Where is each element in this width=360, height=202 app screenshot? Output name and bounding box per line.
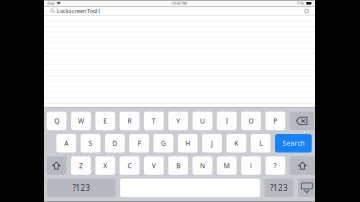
button[interactable] <box>44 16 315 21</box>
button[interactable]: D <box>105 134 125 152</box>
button[interactable]: X <box>95 156 115 175</box>
button[interactable]: C <box>120 156 139 175</box>
staticText: Y <box>176 116 180 125</box>
staticText: S <box>89 139 93 148</box>
staticText: V <box>152 161 156 170</box>
button[interactable]: ! <box>241 156 261 175</box>
staticText: B <box>176 161 180 170</box>
button[interactable]: U <box>193 112 212 130</box>
button[interactable] <box>44 38 315 43</box>
button[interactable]: ?123 <box>265 179 293 197</box>
button[interactable]: A <box>56 134 76 152</box>
staticText: W <box>78 116 84 125</box>
staticText: J <box>211 139 213 148</box>
staticText: F <box>138 139 141 148</box>
button[interactable]: ? <box>265 156 285 175</box>
staticText: L <box>259 139 262 148</box>
staticText: N <box>200 161 205 170</box>
button[interactable]: W <box>71 112 91 130</box>
staticText: X <box>103 161 107 170</box>
button[interactable]: N <box>193 156 212 175</box>
button[interactable]: S <box>81 134 100 152</box>
staticText: O <box>249 116 254 125</box>
button[interactable]: Shift <box>47 156 67 175</box>
staticText: ?123 <box>270 182 288 193</box>
staticText: 71% <box>297 1 304 6</box>
button[interactable]: Delete <box>290 112 314 130</box>
button[interactable] <box>44 60 315 65</box>
staticText: T <box>152 116 156 125</box>
button[interactable]: R <box>120 112 139 130</box>
button[interactable]: E <box>95 112 115 130</box>
button[interactable]: ?123 <box>47 179 116 197</box>
button[interactable]: F <box>129 134 149 152</box>
staticText: Lockscreen Tool <box>57 7 97 15</box>
button[interactable] <box>44 27 315 32</box>
staticText: C <box>128 161 132 170</box>
button[interactable]: H <box>178 134 198 152</box>
staticText: K <box>234 139 238 148</box>
staticText: 10:05 PM <box>171 1 187 6</box>
button[interactable]: L <box>251 134 271 152</box>
button[interactable]: B <box>168 156 188 175</box>
button[interactable] <box>44 82 315 87</box>
staticText: R <box>128 116 132 125</box>
staticText: Q <box>54 116 59 125</box>
staticText: U <box>200 116 205 125</box>
staticText: Z <box>79 161 83 170</box>
staticText: M <box>224 161 230 170</box>
button[interactable]: I <box>217 112 237 130</box>
button[interactable]: Hide Keyboard <box>298 179 316 197</box>
staticText: ?123 <box>72 182 90 193</box>
staticText: E <box>103 116 107 125</box>
staticText: P <box>273 116 277 125</box>
button[interactable]: Q <box>47 112 67 130</box>
button[interactable]: Shift <box>290 156 316 175</box>
staticText: G <box>161 139 166 148</box>
button[interactable]: J <box>202 134 222 152</box>
staticText: H <box>185 139 190 148</box>
button[interactable] <box>44 49 315 54</box>
staticText: Search <box>282 139 304 148</box>
button[interactable] <box>44 71 315 76</box>
staticText: iPad <box>47 1 54 6</box>
button[interactable]: T <box>144 112 164 130</box>
staticText: ! <box>250 161 252 170</box>
staticText: A <box>64 139 68 148</box>
button[interactable]: K <box>226 134 246 152</box>
staticText: D <box>112 139 117 148</box>
button[interactable]: Y <box>168 112 188 130</box>
button[interactable]: O <box>241 112 261 130</box>
button[interactable]: M <box>217 156 237 175</box>
button[interactable]: V <box>144 156 164 175</box>
button[interactable]: Search <box>275 134 312 152</box>
button[interactable]: Z <box>71 156 91 175</box>
button[interactable]: P <box>265 112 285 130</box>
button[interactable] <box>44 98 315 104</box>
button[interactable]: G <box>154 134 173 152</box>
button[interactable] <box>44 93 315 98</box>
staticText: I <box>226 116 228 125</box>
staticText: ? <box>274 161 277 170</box>
button[interactable]: Lockscreen Tool <box>44 6 315 16</box>
